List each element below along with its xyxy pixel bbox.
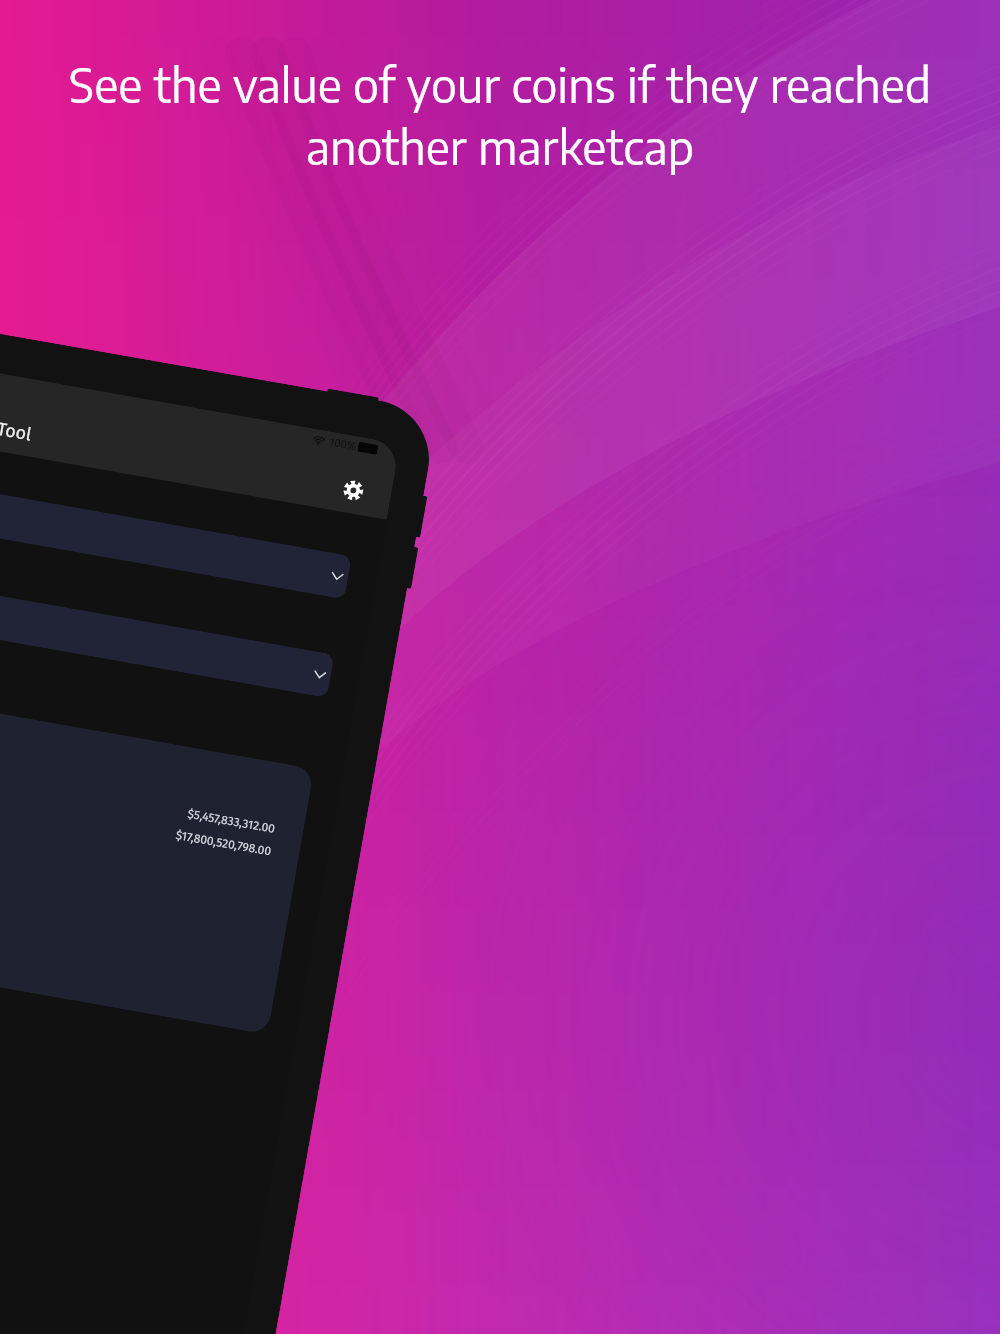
staticText: Crypto Marketcap Comparison Tool bbox=[0, 374, 34, 446]
button[interactable] bbox=[0, 544, 334, 698]
staticText: $5,457,833,312.00 bbox=[186, 807, 277, 836]
button[interactable]: $5,457,833,312.00 bbox=[0, 658, 314, 1035]
button[interactable] bbox=[0, 445, 352, 599]
staticText: 100% bbox=[328, 435, 358, 453]
staticText: See the value of your coins if they reac… bbox=[36, 55, 964, 175]
button[interactable]: Settings bbox=[336, 473, 371, 508]
staticText: $17,800,520,798.00 bbox=[175, 828, 273, 858]
